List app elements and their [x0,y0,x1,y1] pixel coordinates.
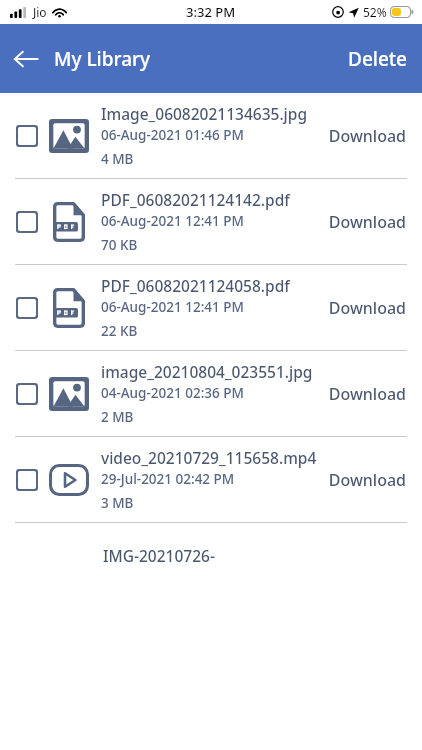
staticText: Image_06082021134635.jpg [101,103,308,124]
button[interactable]: Download [326,119,408,153]
button[interactable]: Download [326,463,408,497]
staticText: video_20210729_115658.mp4 [101,447,317,468]
staticText: 70 KB [101,236,138,254]
staticText: 04-Aug-2021 02:36 PM [101,384,244,402]
staticText: 06-Aug-2021 12:41 PM [101,212,244,230]
staticText: Download [328,297,406,319]
staticText: Jio [33,4,47,20]
staticText: IMG-20210726- [103,545,215,566]
staticText: image_20210804_023551.jpg [101,361,313,382]
staticText: 22 KB [101,322,138,340]
staticText: 29-Jul-2021 02:42 PM [101,470,235,488]
button[interactable]: Select PDF_06082021124058.pdf [0,265,422,350]
button[interactable]: Select PDF_06082021124058.pdf [12,293,42,323]
staticText: 06-Aug-2021 01:46 PM [101,126,244,144]
button[interactable]: Select Image_06082021134635.jpg [0,93,422,178]
staticText: Download [328,125,406,147]
button[interactable]: Delete [334,36,422,82]
staticText: PDF_06082021124058.pdf [101,275,290,296]
button[interactable]: Download [326,377,408,411]
button[interactable]: Download [326,291,408,325]
staticText: 52% [363,4,387,20]
staticText: 2 MB [101,408,134,426]
staticText: Download [328,383,406,405]
staticText: 3 MB [101,494,134,512]
staticText: My Library [54,46,151,72]
button[interactable]: Select PDF_06082021124142.pdf [0,179,422,264]
staticText: 3:32 PM [186,3,236,21]
button[interactable]: Select image_20210804_023551.jpg [0,351,422,436]
button[interactable]: Back [0,37,46,81]
button[interactable]: Select image_20210804_023551.jpg [12,379,42,409]
staticText: Delete [348,46,408,72]
staticText: Download [328,211,406,233]
button[interactable]: Select Image_06082021134635.jpg [12,121,42,151]
button[interactable]: Download [326,205,408,239]
button[interactable]: Select PDF_06082021124142.pdf [12,207,42,237]
staticText: Download [328,469,406,491]
button[interactable]: IMG-20210726- [0,523,422,583]
button[interactable]: Select video_20210729_115658.mp4 [0,437,422,522]
button[interactable]: Select video_20210729_115658.mp4 [12,465,42,495]
staticText: PDF_06082021124142.pdf [101,189,290,210]
staticText: 4 MB [101,150,134,168]
staticText: 06-Aug-2021 12:41 PM [101,298,244,316]
